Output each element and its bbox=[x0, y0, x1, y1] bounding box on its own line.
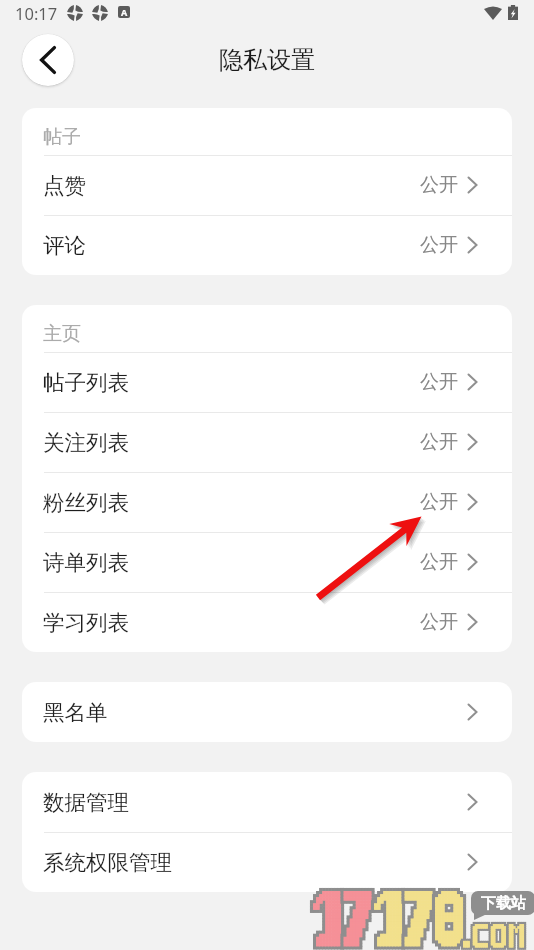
staticText: 诗单列表 bbox=[43, 549, 129, 576]
staticText: 公开 bbox=[420, 370, 458, 394]
staticText: 评论 bbox=[43, 232, 86, 259]
staticText: 黑名单 bbox=[43, 699, 108, 726]
staticText: A bbox=[121, 6, 128, 18]
button[interactable]: 关注列表 bbox=[22, 412, 512, 472]
staticText: 帖子 bbox=[43, 125, 81, 149]
staticText: 关注列表 bbox=[43, 429, 129, 456]
button[interactable]: Back bbox=[22, 34, 74, 86]
staticText: 学习列表 bbox=[43, 609, 129, 636]
button[interactable]: 粉丝列表 bbox=[22, 472, 512, 532]
button[interactable]: 系统权限管理 bbox=[22, 832, 512, 892]
staticText: 公开 bbox=[420, 610, 458, 634]
staticText: 点赞 bbox=[43, 172, 86, 199]
button[interactable]: 帖子列表 bbox=[22, 352, 512, 412]
staticText: 下载站 bbox=[481, 894, 526, 913]
staticText: 10:17 bbox=[15, 2, 58, 24]
button[interactable]: 评论 bbox=[22, 215, 512, 275]
button[interactable]: 点赞 bbox=[22, 155, 512, 215]
staticText: 公开 bbox=[420, 490, 458, 514]
button[interactable]: 数据管理 bbox=[22, 772, 512, 832]
staticText: 主页 bbox=[43, 322, 81, 346]
button[interactable]: 黑名单 bbox=[22, 682, 512, 742]
button[interactable]: 诗单列表 bbox=[22, 532, 512, 592]
staticText: 数据管理 bbox=[43, 789, 129, 816]
staticText: 系统权限管理 bbox=[43, 849, 172, 876]
staticText: 粉丝列表 bbox=[43, 489, 129, 516]
staticText: 公开 bbox=[420, 233, 458, 257]
button[interactable]: 学习列表 bbox=[22, 592, 512, 652]
staticText: 隐私设置 bbox=[0, 45, 534, 75]
staticText: 公开 bbox=[420, 430, 458, 454]
staticText: 帖子列表 bbox=[43, 369, 129, 396]
staticText: 公开 bbox=[420, 550, 458, 574]
staticText: 公开 bbox=[420, 173, 458, 197]
